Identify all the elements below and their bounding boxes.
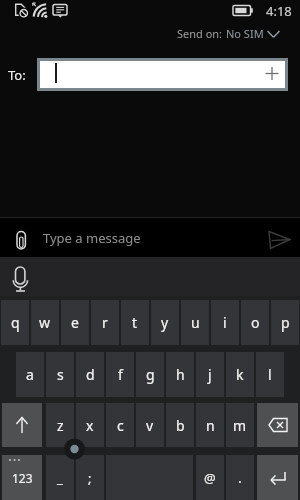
staticText: Send on:: [177, 26, 223, 41]
button[interactable]: [2, 403, 42, 447]
staticText: h: [176, 365, 185, 384]
button[interactable]: i: [211, 300, 239, 345]
button[interactable]: @: [196, 455, 224, 500]
staticText: s: [57, 365, 64, 384]
button[interactable]: a: [16, 352, 44, 397]
button[interactable]: u: [181, 300, 209, 345]
staticText: 4:18: [266, 2, 292, 20]
staticText: k: [236, 365, 244, 384]
staticText: e: [71, 313, 79, 332]
button[interactable]: w: [31, 300, 59, 345]
staticText: a: [26, 365, 34, 384]
button[interactable]: l: [256, 352, 284, 397]
staticText: To:: [8, 66, 26, 84]
button[interactable]: n: [196, 403, 224, 447]
button[interactable]: e: [61, 300, 89, 345]
staticText: @: [204, 469, 216, 487]
staticText: 123: [12, 470, 33, 486]
button[interactable]: ;: [76, 455, 104, 500]
button[interactable]: h: [166, 352, 194, 397]
button[interactable]: m: [226, 403, 254, 447]
button[interactable]: k: [226, 352, 254, 397]
staticText: w: [39, 313, 51, 332]
button[interactable]: r: [91, 300, 119, 345]
button[interactable]: Send on:: [170, 25, 290, 42]
staticText: u: [191, 313, 200, 332]
button[interactable]: 123: [2, 455, 42, 500]
button[interactable]: [257, 403, 298, 447]
staticText: No SIM: [226, 26, 264, 41]
button[interactable]: [37, 58, 288, 91]
staticText: z: [57, 416, 64, 435]
staticText: Type a message: [43, 229, 141, 247]
button[interactable]: g: [136, 352, 164, 397]
staticText: l: [268, 365, 272, 384]
staticText: p: [281, 313, 290, 332]
button[interactable]: o: [241, 300, 269, 345]
staticText: b: [176, 416, 185, 435]
staticText: r: [102, 313, 108, 332]
staticText: d: [86, 365, 95, 384]
staticText: q: [11, 313, 20, 332]
button[interactable]: f: [106, 352, 134, 397]
staticText: v: [146, 416, 154, 435]
button[interactable]: b: [166, 403, 194, 447]
button[interactable]: x: [76, 403, 104, 447]
button[interactable]: z: [46, 403, 74, 447]
button[interactable]: [257, 455, 298, 500]
button[interactable]: s: [46, 352, 74, 397]
button[interactable]: t: [121, 300, 149, 345]
button[interactable]: y: [151, 300, 179, 345]
staticText: f: [118, 365, 123, 384]
button[interactable]: v: [136, 403, 164, 447]
staticText: .: [238, 468, 242, 487]
staticText: x: [86, 416, 94, 435]
staticText: y: [161, 313, 169, 332]
staticText: j: [208, 365, 212, 384]
button[interactable]: _: [46, 455, 74, 500]
button[interactable]: .: [226, 455, 254, 500]
staticText: ;: [88, 469, 92, 487]
staticText: i: [223, 313, 227, 332]
staticText: _: [57, 469, 63, 487]
button[interactable]: j: [196, 352, 224, 397]
staticText: o: [251, 313, 260, 332]
staticText: n: [206, 416, 215, 435]
button[interactable]: [0, 257, 300, 296]
button[interactable]: c: [106, 403, 134, 447]
staticText: g: [146, 365, 155, 384]
button[interactable]: d: [76, 352, 104, 397]
button[interactable]: Type a message: [0, 218, 300, 257]
staticText: t: [132, 313, 138, 332]
staticText: m: [233, 416, 247, 435]
button[interactable]: q: [1, 300, 29, 345]
button[interactable]: p: [271, 300, 299, 345]
staticText: c: [117, 416, 124, 435]
